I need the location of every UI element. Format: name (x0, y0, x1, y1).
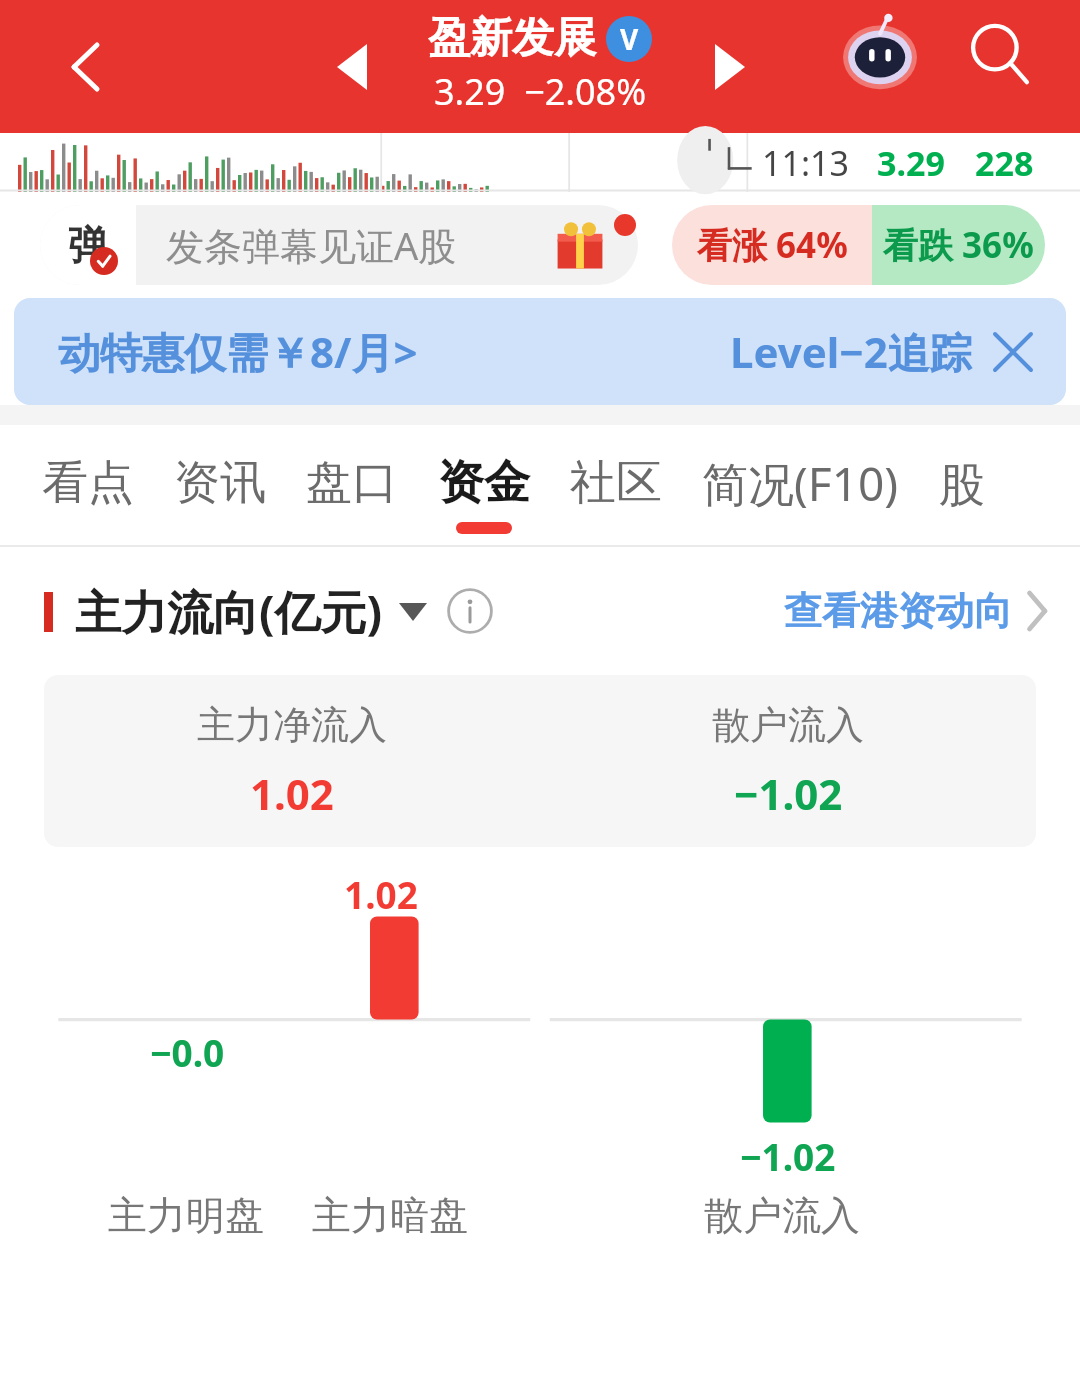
staticText: 1.02 (250, 765, 334, 822)
staticText: 228 (975, 140, 1034, 186)
staticText: 11:13 (762, 140, 849, 186)
staticText: −0.0 (150, 1027, 225, 1077)
button[interactable]: 资金 (438, 425, 530, 547)
button[interactable]: 弹 (40, 205, 638, 285)
button[interactable]: Back (48, 28, 126, 106)
button[interactable]: AI assistant (828, 2, 932, 106)
staticText: 1.02 (344, 869, 418, 919)
button[interactable]: Close banner (984, 323, 1042, 381)
staticText: V (620, 20, 639, 58)
staticText: 盘口 (306, 454, 398, 512)
button[interactable]: 社区 (570, 425, 662, 547)
staticText: 主力流向(亿元) (75, 580, 383, 643)
staticText: 主力明盘 (108, 1191, 264, 1240)
staticText: 发条弹幕见证A股 (166, 219, 457, 271)
staticText: Level−2追踪 (730, 323, 972, 380)
button[interactable]: 盘口 (306, 425, 398, 547)
staticText: 散户流入 (704, 1191, 860, 1240)
button[interactable]: 动特惠仅需￥8/月> (14, 298, 1066, 405)
button[interactable]: 主力净流入 (44, 675, 1036, 847)
staticText: −1.02 (740, 1131, 836, 1181)
staticText: 3.29 (877, 140, 945, 186)
staticText: 看点 (42, 454, 134, 512)
staticText: 主力净流入 (197, 701, 387, 749)
button[interactable]: 资讯 (174, 425, 266, 547)
button[interactable]: Next stock (690, 27, 770, 107)
button[interactable]: 查看港资动向 (784, 587, 1048, 635)
button[interactable]: Previous stock (312, 27, 392, 107)
staticText: 看跌 36% (883, 221, 1034, 269)
staticText: 看涨 64% (697, 221, 848, 269)
staticText: 3.29 −2.08% (434, 67, 647, 116)
button[interactable]: 看涨 64% (672, 205, 1045, 285)
staticText: −1.02 (734, 765, 843, 822)
staticText: 资金 (438, 454, 530, 512)
staticText: 散户流入 (712, 701, 864, 749)
staticText: 查看港资动向 (784, 587, 1012, 635)
staticText: 社区 (570, 454, 662, 512)
button[interactable]: Info (438, 579, 502, 643)
staticText: 弹 (68, 220, 108, 270)
staticText: 盈新发展 (428, 12, 596, 65)
button[interactable]: 简况(F10) (702, 425, 899, 547)
staticText: 资讯 (174, 454, 266, 512)
button[interactable]: Search (950, 4, 1050, 104)
button[interactable]: 盈新发展 (428, 12, 652, 116)
button[interactable]: 主力流向(亿元) (44, 580, 427, 643)
staticText: 股 (939, 457, 985, 515)
button[interactable]: 看点 (42, 425, 134, 547)
staticText: 主力暗盘 (312, 1191, 468, 1240)
staticText: 简况(F10) (702, 452, 899, 515)
staticText: 动特惠仅需￥8/月> (58, 323, 418, 380)
